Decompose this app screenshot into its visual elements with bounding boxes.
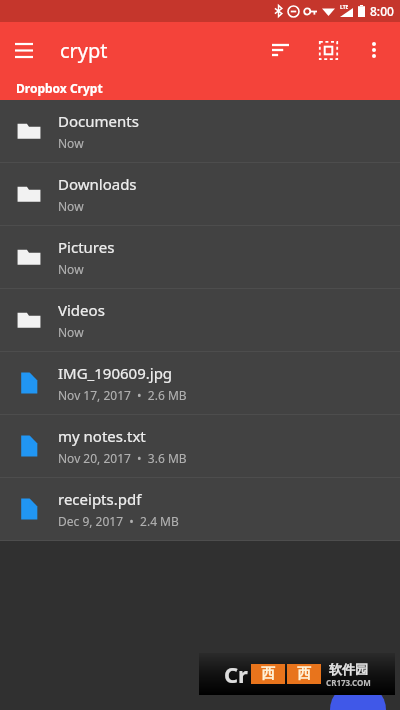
staticText: my notes.txt <box>58 426 146 446</box>
staticText: Nov 17, 2017 • 2.6 MB <box>58 387 187 403</box>
button[interactable]: receipts.pdf <box>0 478 400 541</box>
staticText: Videos <box>58 300 105 320</box>
button[interactable]: IMG_190609.jpg <box>0 352 400 415</box>
staticText: Nov 20, 2017 • 3.6 MB <box>58 450 187 466</box>
staticText: Now <box>58 135 84 151</box>
staticText: Downloads <box>58 174 137 194</box>
staticText: 软件园 <box>329 661 368 677</box>
staticText: 西 <box>297 665 311 683</box>
staticText: Now <box>58 198 84 214</box>
staticText: Documents <box>58 111 139 131</box>
staticText: crypt <box>60 37 108 64</box>
staticText: Dropbox Crypt <box>16 80 103 96</box>
button[interactable]: Sort <box>256 26 304 74</box>
staticText: Cr <box>224 659 248 689</box>
staticText: LTE <box>340 4 349 11</box>
button[interactable]: More options <box>352 28 396 72</box>
staticText: Dec 9, 2017 • 2.4 MB <box>58 513 179 529</box>
button[interactable]: Open navigation drawer <box>0 26 48 74</box>
button[interactable]: Documents <box>0 100 400 163</box>
staticText: 8:00 <box>370 3 394 19</box>
button[interactable]: Select <box>304 26 352 74</box>
staticText: Pictures <box>58 237 115 257</box>
staticText: 西 <box>261 665 275 683</box>
staticText: CR173.COM <box>326 677 371 688</box>
staticText: Now <box>58 324 84 340</box>
staticText: receipts.pdf <box>58 489 142 509</box>
button[interactable]: Pictures <box>0 226 400 289</box>
button[interactable]: my notes.txt <box>0 415 400 478</box>
staticText: Now <box>58 261 84 277</box>
staticText: IMG_190609.jpg <box>58 363 173 383</box>
button[interactable]: Add <box>330 682 386 710</box>
button[interactable]: Videos <box>0 289 400 352</box>
button[interactable]: Downloads <box>0 163 400 226</box>
